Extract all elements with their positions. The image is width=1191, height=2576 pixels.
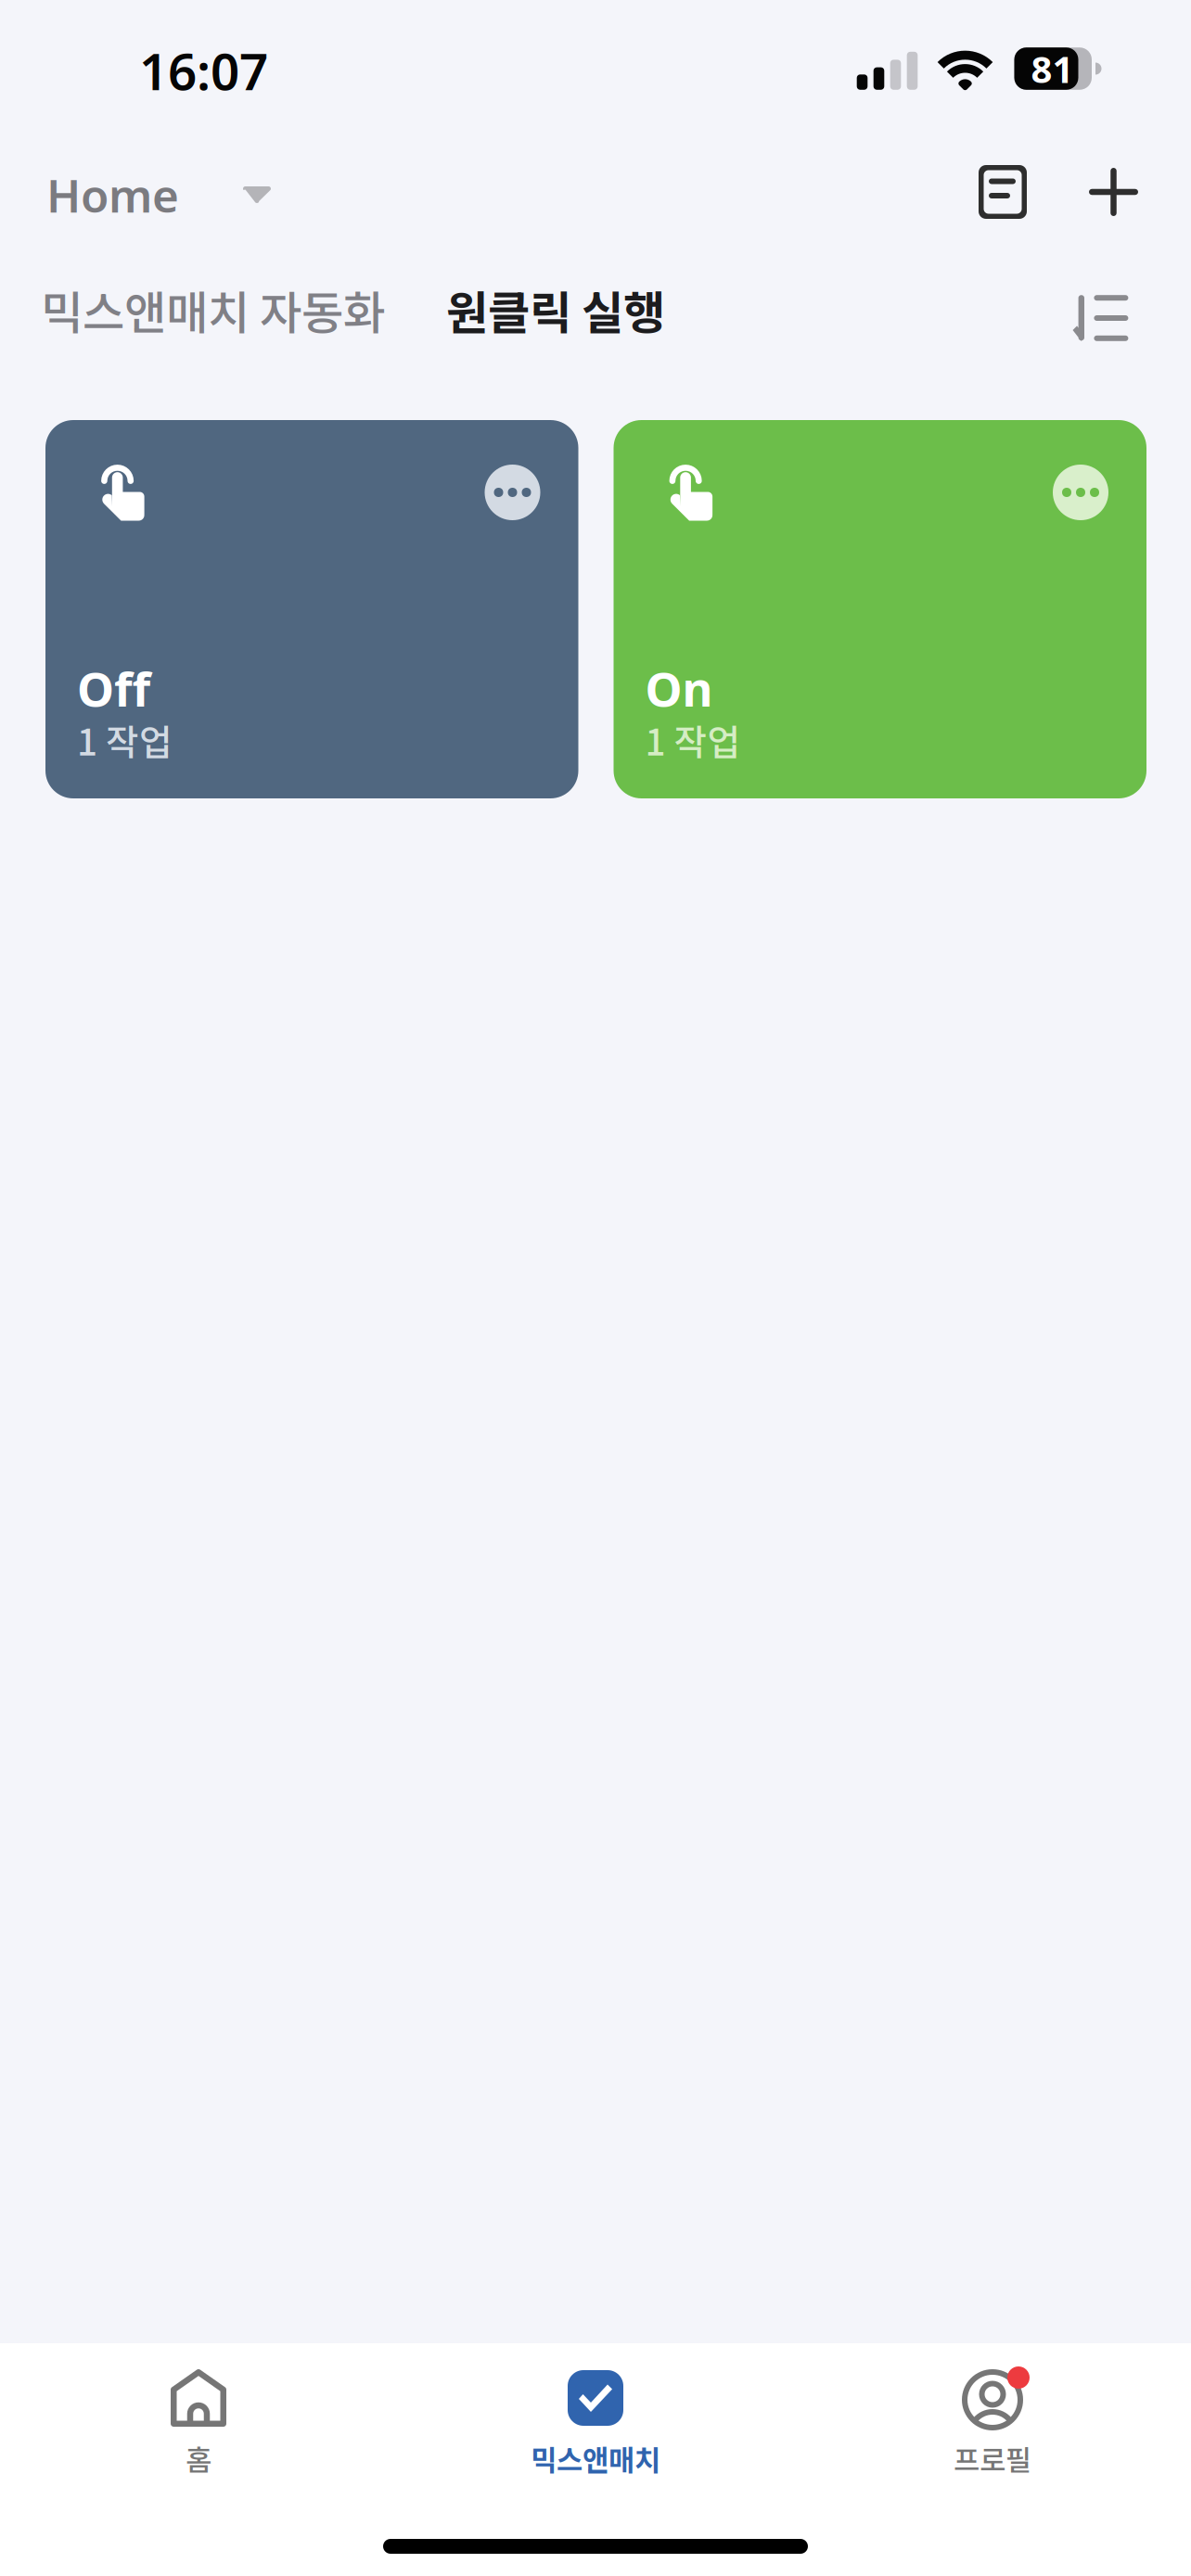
button[interactable]: 프로필: [794, 2343, 1191, 2479]
staticText: 16:07: [139, 37, 268, 104]
staticText: 1 작업: [645, 714, 741, 766]
button[interactable]: Sort: [1054, 277, 1125, 343]
button[interactable]: Add: [1069, 165, 1159, 224]
staticText: 믹스앤매치 자동화: [41, 277, 385, 343]
staticText: On: [645, 657, 713, 720]
staticText: Home: [46, 164, 179, 225]
staticText: 원클릭 실행: [446, 277, 665, 343]
button[interactable]: 홈: [0, 2343, 397, 2479]
staticText: 프로필: [954, 2438, 1031, 2479]
staticText: 홈: [186, 2438, 211, 2479]
button[interactable]: 원클릭 실행: [385, 277, 665, 343]
button[interactable]: 믹스앤매치: [397, 2343, 794, 2479]
staticText: 81: [1031, 44, 1074, 93]
staticText: 1 작업: [77, 714, 173, 766]
button[interactable]: On: [614, 420, 1146, 798]
staticText: 믹스앤매치: [531, 2438, 660, 2479]
button[interactable]: 믹스앤매치 자동화: [41, 277, 385, 343]
button[interactable]: Home: [46, 159, 272, 231]
button[interactable]: Off: [45, 420, 578, 798]
staticText: Off: [77, 657, 150, 720]
button[interactable]: Notes: [967, 163, 1069, 226]
